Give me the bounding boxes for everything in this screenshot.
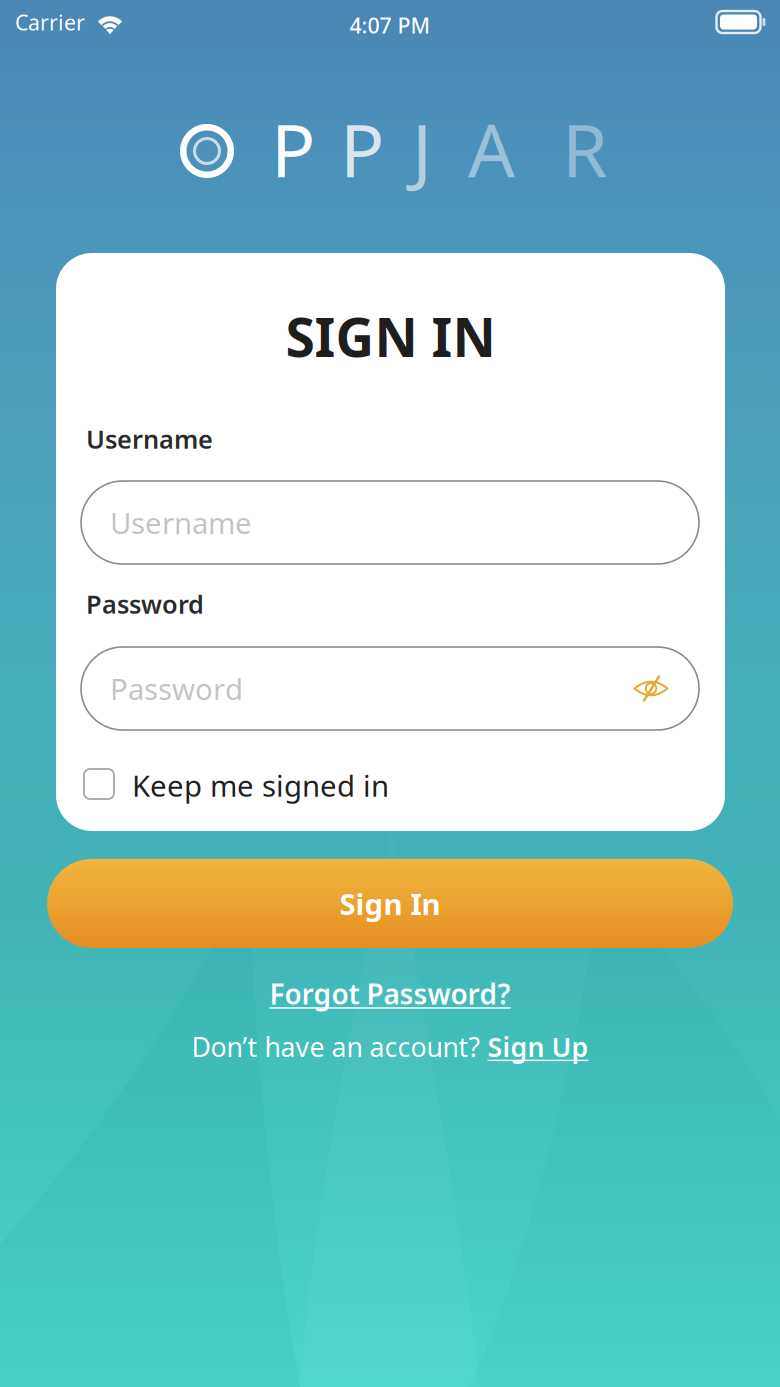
button[interactable]: Forgot Password? bbox=[0, 975, 780, 1012]
staticText: 4:07 PM bbox=[349, 11, 430, 39]
staticText: Username bbox=[86, 422, 213, 456]
staticText: Username bbox=[110, 503, 252, 542]
staticText: A bbox=[468, 100, 515, 197]
staticText: P bbox=[271, 100, 315, 197]
staticText: Carrier bbox=[15, 8, 85, 36]
staticText: SIGN IN bbox=[285, 301, 495, 372]
button[interactable]: Password bbox=[81, 647, 699, 730]
staticText: Password bbox=[110, 669, 243, 708]
button[interactable]: Sign In bbox=[47, 859, 733, 948]
staticText: Forgot Password? bbox=[269, 975, 510, 1012]
staticText: J bbox=[412, 100, 432, 197]
button[interactable]: Username bbox=[81, 481, 699, 564]
staticText: Don’t have an account? bbox=[191, 1029, 487, 1064]
staticText: R bbox=[562, 100, 608, 197]
staticText: P bbox=[340, 100, 384, 197]
staticText: Sign In bbox=[339, 884, 440, 923]
staticText: Sign Up bbox=[487, 1029, 588, 1064]
staticText: Password bbox=[86, 587, 204, 621]
staticText: Keep me signed in bbox=[132, 766, 389, 805]
button[interactable]: Keep me signed in bbox=[84, 766, 384, 804]
button[interactable]: Sign Up bbox=[487, 1029, 588, 1064]
